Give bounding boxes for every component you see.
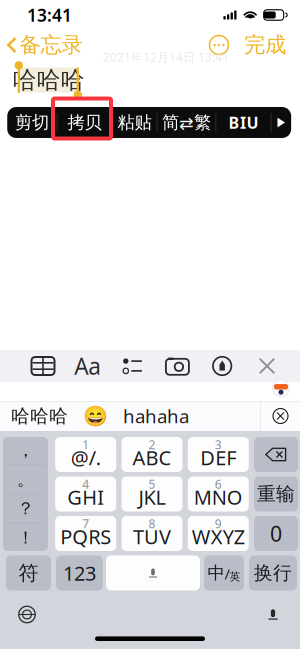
button[interactable]: 清单 [116, 350, 150, 382]
staticText: 4 [82, 476, 89, 492]
button[interactable]: 粘贴 [112, 107, 157, 138]
staticText: 哈哈哈 [12, 65, 84, 95]
button[interactable]: 切换键盘 [10, 599, 44, 629]
button[interactable]: 剪切 [7, 107, 57, 138]
staticText: 符 [18, 561, 38, 585]
button[interactable]: ， [3, 436, 48, 465]
staticText: GHI [67, 484, 104, 510]
button[interactable]: 更多 [204, 30, 234, 60]
staticText: 6 [215, 476, 222, 492]
staticText: 备忘录 [19, 32, 82, 58]
staticText: ！ [17, 527, 34, 548]
staticText: PQRS [60, 523, 111, 550]
staticText: 粘贴 [118, 112, 152, 133]
staticText: B [228, 112, 239, 133]
button[interactable]: ？ [3, 494, 48, 523]
button[interactable]: 哈哈哈 [8, 397, 71, 434]
staticText: 3 [215, 436, 222, 452]
staticText: 7 [82, 515, 89, 531]
staticText: 重输 [257, 482, 295, 505]
button[interactable]: 关闭候选 [261, 401, 300, 431]
staticText: 1 [82, 436, 89, 452]
staticText: 简⇄繁 [162, 112, 211, 133]
staticText: MNO [194, 484, 243, 510]
staticText: 哈哈哈 [11, 404, 68, 427]
staticText: 13:41 [27, 3, 72, 26]
button[interactable]: 0 [254, 516, 298, 551]
button[interactable]: 删除 [254, 437, 298, 472]
staticText: 123 [63, 560, 96, 586]
staticText: 剪切 [15, 112, 49, 133]
button[interactable]: 符 [6, 555, 51, 590]
staticText: 😄 [83, 405, 108, 427]
button[interactable]: 5 [121, 476, 182, 511]
button[interactable]: 语音输入 [256, 599, 290, 629]
staticText: @/. [71, 444, 101, 471]
staticText: 拷贝 [68, 112, 102, 133]
button[interactable]: 字体样式 [216, 107, 271, 138]
staticText: / [224, 564, 229, 584]
button[interactable]: 空格 [106, 555, 200, 590]
button[interactable]: 123 [56, 555, 103, 590]
button[interactable]: 。 [3, 465, 48, 494]
button[interactable]: 3 [188, 437, 249, 472]
staticText: ABC [132, 444, 171, 471]
button[interactable]: 重输 [254, 476, 298, 511]
button[interactable]: 中 [204, 555, 244, 590]
staticText: WXYZ [192, 523, 245, 550]
button[interactable]: 简⇄繁 [157, 107, 215, 138]
button[interactable]: 表格 [26, 350, 60, 382]
staticText: JKL [138, 484, 165, 510]
button[interactable]: 换行 [249, 555, 297, 590]
button[interactable]: 6 [188, 476, 249, 511]
staticText: TUV [133, 523, 171, 550]
button[interactable]: ！ [3, 523, 48, 552]
button[interactable]: 拷贝 [57, 107, 112, 138]
button[interactable]: 9 [188, 516, 249, 551]
button[interactable]: hahaha [120, 397, 192, 435]
button[interactable]: 8 [121, 516, 182, 551]
staticText: 2021年12月14日 13:41 [103, 49, 229, 65]
staticText: ？ [17, 498, 34, 519]
button[interactable]: 完成 [236, 29, 294, 61]
staticText: 9 [215, 515, 222, 531]
button[interactable]: 格式 [71, 350, 105, 382]
staticText: 换行 [254, 561, 292, 584]
staticText: 8 [148, 515, 155, 531]
button[interactable]: 2 [121, 437, 182, 472]
staticText: 中 [207, 562, 224, 584]
button[interactable]: 表情候选 [83, 400, 108, 432]
button[interactable]: 1 [55, 437, 116, 472]
button[interactable]: 7 [55, 516, 116, 551]
button[interactable]: 标记 [205, 350, 239, 382]
staticText: 。 [17, 469, 34, 490]
button[interactable]: 备忘录 [0, 29, 88, 61]
staticText: hahaha [123, 404, 189, 428]
staticText: DEF [200, 444, 236, 471]
staticText: ， [17, 440, 34, 461]
staticText: U [246, 112, 258, 133]
staticText: 0 [270, 519, 282, 548]
staticText: 完成 [244, 32, 286, 58]
button[interactable]: 关闭 [250, 350, 284, 382]
button[interactable]: 4 [55, 476, 116, 511]
button[interactable]: 更多选项 [271, 107, 291, 138]
staticText: I [240, 112, 246, 133]
staticText: 英 [229, 570, 240, 583]
button[interactable]: 相机 [160, 350, 194, 382]
staticText: Aa [74, 351, 101, 381]
staticText: 5 [148, 476, 155, 492]
staticText: 2 [148, 436, 155, 452]
